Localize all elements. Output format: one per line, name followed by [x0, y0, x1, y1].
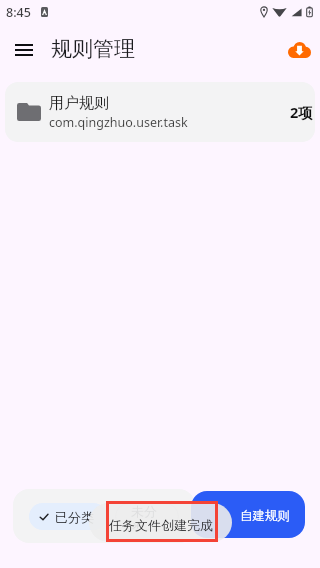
staticText: com.qingzhuo.user.task — [49, 114, 188, 131]
staticText: 任务文件创建完成 — [109, 517, 213, 533]
staticText: 2项 — [290, 102, 313, 122]
staticText: 已分类 — [55, 509, 94, 525]
staticText: 自建规则 — [240, 508, 290, 524]
staticText: 未分类 — [131, 503, 163, 530]
button[interactable]: 用户规则 — [5, 82, 315, 142]
staticText: 用户规则 — [49, 94, 109, 113]
staticText: 规则管理 — [51, 36, 135, 62]
button[interactable]: 已分类 — [29, 503, 107, 530]
button[interactable]: Download — [282, 33, 316, 67]
button[interactable]: Menu — [6, 32, 42, 68]
staticText: 8:45 — [6, 4, 31, 21]
button[interactable]: 未分类 — [115, 503, 179, 530]
button[interactable]: 自建规则 — [191, 491, 305, 538]
